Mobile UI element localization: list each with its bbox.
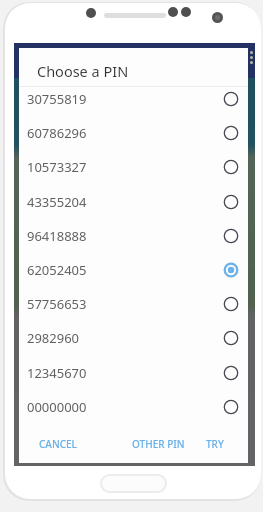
- staticText: 60786296: [27, 124, 87, 142]
- staticText: OTHER PIN: [132, 437, 185, 451]
- button[interactable]: More options: [245, 47, 258, 68]
- button[interactable]: Home: [100, 474, 167, 493]
- staticText: 62052405: [27, 261, 87, 279]
- staticText: 00000000: [27, 398, 87, 416]
- button[interactable]: TRY: [198, 429, 232, 459]
- button[interactable]: 10573327: [19, 150, 248, 184]
- button[interactable]: 96418888: [19, 219, 248, 253]
- staticText: 12345670: [27, 364, 87, 382]
- staticText: CANCEL: [39, 437, 77, 451]
- staticText: Choose a PIN: [37, 61, 129, 81]
- button[interactable]: 60786296: [19, 116, 248, 150]
- button[interactable]: 30755819: [19, 82, 248, 116]
- button[interactable]: 2982960: [19, 321, 248, 355]
- button[interactable]: 00000000: [19, 390, 248, 424]
- button[interactable]: OTHER PIN: [124, 429, 193, 459]
- staticText: TRY: [206, 437, 224, 451]
- button[interactable]: 57756653: [19, 287, 248, 321]
- button[interactable]: 62052405: [19, 253, 248, 287]
- button[interactable]: 12345670: [19, 356, 248, 390]
- staticText: 2982960: [27, 329, 80, 347]
- staticText: 30755819: [27, 90, 87, 108]
- staticText: 96418888: [27, 227, 87, 245]
- staticText: 43355204: [27, 193, 87, 211]
- button[interactable]: CANCEL: [31, 429, 85, 459]
- button[interactable]: 43355204: [19, 185, 248, 219]
- staticText: 57756653: [27, 295, 87, 313]
- staticText: 10573327: [27, 158, 87, 176]
